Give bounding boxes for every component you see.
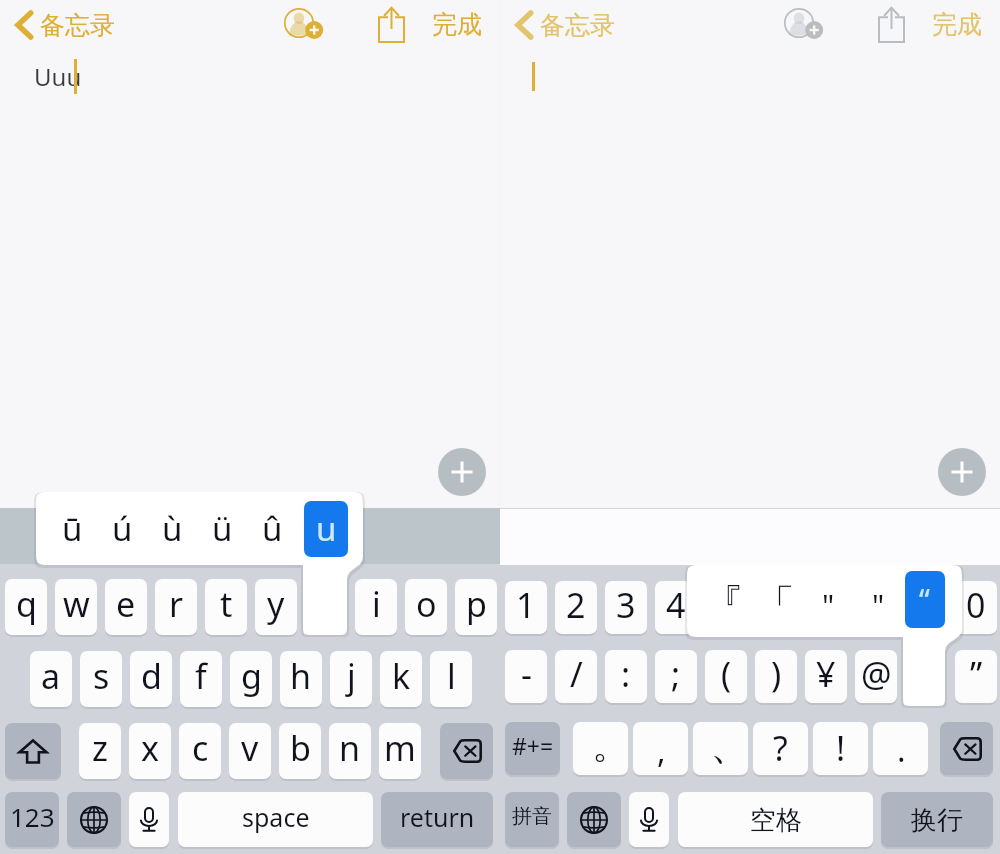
button[interactable]: 8: [855, 581, 897, 634]
button[interactable]: “: [905, 571, 945, 628]
button[interactable]: ú: [100, 501, 145, 557]
button[interactable]: 、: [693, 722, 748, 775]
staticText: p: [466, 581, 487, 627]
button[interactable]: Backspace: [940, 722, 993, 775]
button[interactable]: ": [806, 571, 850, 628]
staticText: 6: [766, 582, 786, 628]
button[interactable]: g: [230, 651, 272, 707]
button[interactable]: ū: [50, 501, 95, 557]
button[interactable]: Dictate: [629, 792, 669, 847]
staticText: 2: [566, 582, 586, 628]
button[interactable]: 123: [5, 792, 59, 847]
button[interactable]: ù: [150, 501, 195, 557]
button[interactable]: i: [355, 579, 397, 635]
button[interactable]: 换行: [881, 792, 993, 847]
staticText: ù: [162, 506, 183, 551]
button[interactable]: v: [229, 723, 271, 779]
button[interactable]: 拼音: [505, 792, 559, 847]
staticText: 5: [716, 582, 736, 628]
button[interactable]: h: [280, 651, 322, 707]
staticText: 「: [755, 579, 795, 629]
button[interactable]: 完成: [424, 1, 490, 47]
button[interactable]: Add attachment: [938, 448, 986, 496]
button[interactable]: Switch keyboard: [67, 792, 121, 847]
button[interactable]: Share: [870, 1, 912, 47]
staticText: 7: [816, 582, 836, 628]
button[interactable]: 4: [655, 581, 697, 634]
button[interactable]: 空格: [678, 792, 873, 847]
button[interactable]: 2: [555, 581, 597, 634]
button[interactable]: Share: [370, 1, 412, 47]
staticText: 8: [866, 582, 886, 628]
button[interactable]: j: [330, 651, 372, 707]
button[interactable]: f: [180, 651, 222, 707]
staticText: t: [220, 581, 233, 627]
button[interactable]: -: [505, 650, 547, 703]
button[interactable]: u: [304, 501, 348, 557]
button[interactable]: ü: [200, 501, 245, 557]
button[interactable]: 7: [805, 581, 847, 634]
staticText: l: [447, 653, 456, 699]
button[interactable]: Dictate: [129, 792, 169, 847]
button[interactable]: space: [178, 792, 373, 847]
button[interactable]: b: [279, 723, 321, 779]
button[interactable]: m: [379, 723, 421, 779]
button[interactable]: d: [130, 651, 172, 707]
button[interactable]: o: [405, 579, 447, 635]
button[interactable]: ": [856, 571, 900, 628]
button[interactable]: e: [105, 579, 147, 635]
button[interactable]: z: [79, 723, 121, 779]
button[interactable]: 5: [705, 581, 747, 634]
button[interactable]: Add attachment: [438, 448, 486, 496]
button[interactable]: c: [179, 723, 221, 779]
button[interactable]: #+=: [505, 722, 560, 775]
button[interactable]: r: [155, 579, 197, 635]
button[interactable]: p: [455, 579, 497, 635]
staticText: 『: [702, 579, 744, 632]
button[interactable]: @: [855, 650, 897, 703]
button[interactable]: y: [255, 579, 297, 635]
button[interactable]: w: [55, 579, 97, 635]
button[interactable]: ): [755, 650, 797, 703]
button[interactable]: x: [129, 723, 171, 779]
button[interactable]: n: [329, 723, 371, 779]
button[interactable]: Add people: [284, 1, 340, 47]
button[interactable]: (: [705, 650, 747, 703]
button[interactable]: 。: [573, 722, 628, 775]
button[interactable]: 0: [955, 581, 997, 634]
button[interactable]: return: [381, 792, 493, 847]
button[interactable]: 「: [756, 571, 800, 628]
button[interactable]: 备忘录: [10, 4, 121, 46]
button[interactable]: 6: [755, 581, 797, 634]
button[interactable]: t: [205, 579, 247, 635]
button[interactable]: q: [5, 579, 47, 635]
staticText: o: [416, 581, 437, 627]
button[interactable]: .: [873, 722, 928, 775]
button[interactable]: 完成: [924, 1, 990, 47]
button[interactable]: ¥: [805, 650, 847, 703]
button[interactable]: /: [555, 650, 597, 703]
button[interactable]: Switch keyboard: [567, 792, 621, 847]
button[interactable]: ,: [633, 722, 688, 775]
button[interactable]: ”: [955, 650, 997, 703]
button[interactable]: 3: [605, 581, 647, 634]
button[interactable]: Backspace: [440, 723, 493, 779]
button[interactable]: 『: [706, 571, 750, 628]
button[interactable]: û: [250, 501, 295, 557]
button[interactable]: :: [605, 650, 647, 703]
button[interactable]: ;: [655, 650, 697, 703]
button[interactable]: 9: [905, 581, 947, 634]
button[interactable]: a: [30, 651, 72, 707]
button[interactable]: !: [813, 722, 868, 775]
button[interactable]: Add people: [784, 1, 840, 47]
staticText: @: [861, 651, 892, 697]
button[interactable]: 1: [505, 581, 547, 634]
staticText: 。: [592, 722, 628, 769]
staticText: 空格: [750, 804, 802, 837]
button[interactable]: ?: [753, 722, 808, 775]
button[interactable]: s: [80, 651, 122, 707]
button[interactable]: 备忘录: [510, 4, 621, 46]
button[interactable]: k: [380, 651, 422, 707]
button[interactable]: Shift: [5, 723, 61, 779]
button[interactable]: l: [430, 651, 472, 707]
